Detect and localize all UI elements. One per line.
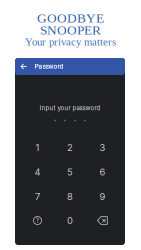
staticText: 6 <box>99 166 105 178</box>
button[interactable]: 6 <box>86 160 118 184</box>
button[interactable]: 3 <box>86 135 118 159</box>
staticText: 7 <box>35 191 40 202</box>
button[interactable]: 8 <box>54 184 86 208</box>
staticText: SNOOPER <box>40 23 101 37</box>
staticText: 3 <box>99 142 105 153</box>
staticText: Input your password <box>39 104 100 112</box>
staticText: 9 <box>99 191 105 202</box>
staticText: GOODBYE <box>37 11 104 25</box>
button[interactable]: 9 <box>86 184 118 208</box>
staticText: 1 <box>35 142 39 153</box>
button[interactable]: 5 <box>54 160 86 184</box>
staticText: 8 <box>67 191 73 202</box>
button[interactable]: 2 <box>54 135 86 159</box>
button[interactable]: Back <box>17 60 30 73</box>
staticText: Password <box>34 63 63 70</box>
button[interactable]: Forgot password <box>21 208 53 232</box>
button[interactable]: 0 <box>54 208 86 232</box>
button[interactable]: 7 <box>21 184 53 208</box>
staticText: 5 <box>67 166 73 178</box>
staticText: 2 <box>67 142 73 153</box>
staticText: 0 <box>67 215 73 226</box>
staticText: ? <box>36 217 39 224</box>
staticText: Your privacy matters <box>25 36 116 48</box>
staticText: 4 <box>34 166 40 178</box>
button[interactable]: 1 <box>21 135 53 159</box>
button[interactable]: 4 <box>21 160 53 184</box>
button[interactable]: Delete <box>86 208 118 232</box>
